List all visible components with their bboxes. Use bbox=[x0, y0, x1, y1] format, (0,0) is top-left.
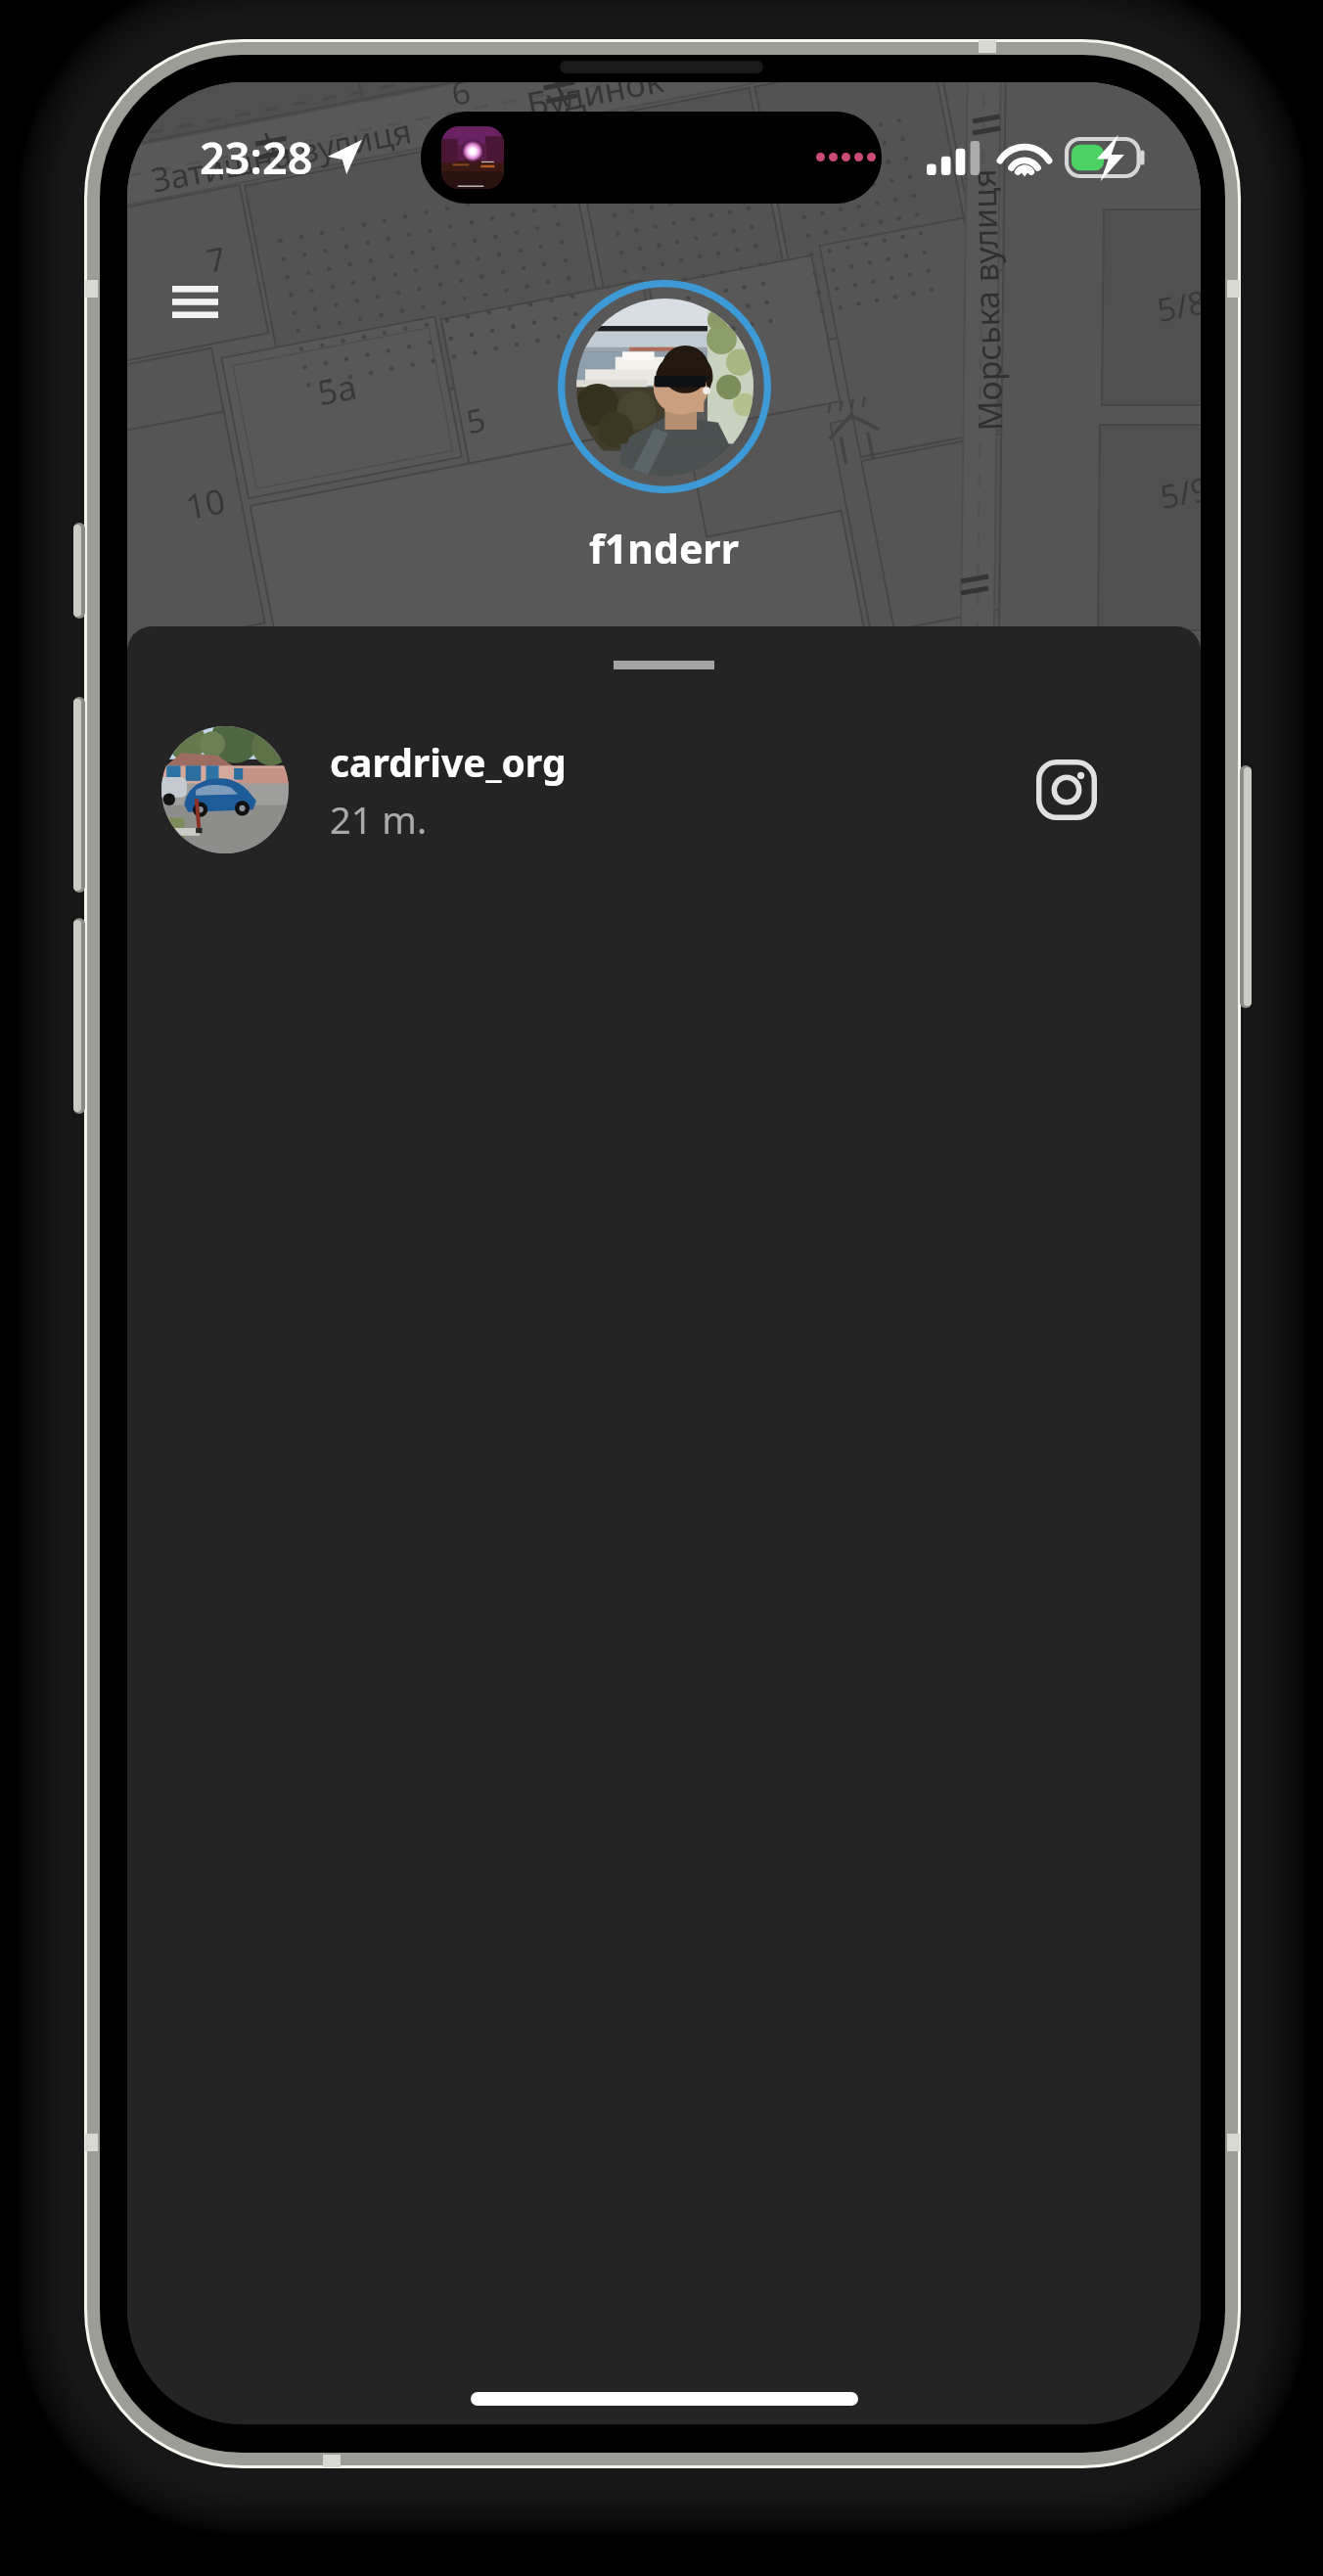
button[interactable]: Menu bbox=[144, 251, 246, 352]
button[interactable]: Instagram bbox=[1020, 743, 1114, 837]
staticText: 21 m. bbox=[330, 794, 428, 845]
button[interactable]: Drag handle bbox=[127, 626, 1201, 705]
staticText: f1nderr bbox=[589, 521, 740, 575]
staticText: cardrive_org bbox=[330, 736, 567, 788]
button[interactable]: Profile photo bbox=[558, 280, 771, 493]
staticText: 23:28 bbox=[200, 127, 313, 187]
button[interactable]: cardrive_org bbox=[127, 726, 1201, 853]
